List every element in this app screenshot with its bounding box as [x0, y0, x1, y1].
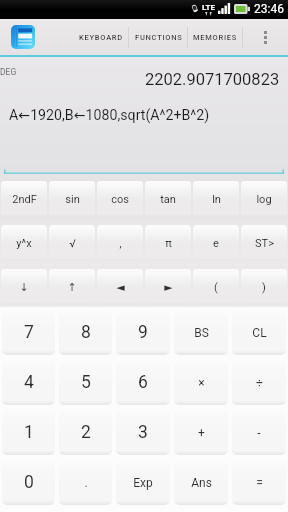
staticText: 1	[24, 422, 34, 443]
staticText: √	[69, 237, 76, 250]
button[interactable]: 3	[116, 410, 170, 455]
staticText: tan	[160, 193, 176, 206]
staticText: Ans	[191, 476, 212, 490]
button[interactable]: tan	[145, 181, 191, 217]
button[interactable]: y^x	[1, 225, 47, 261]
button[interactable]: 1	[2, 410, 55, 455]
button[interactable]: =	[232, 460, 286, 505]
button[interactable]: √	[49, 225, 95, 261]
button[interactable]: 2ndF	[1, 181, 47, 217]
staticText: DEG	[0, 67, 17, 77]
staticText: FUNCTIONS	[135, 33, 183, 42]
button[interactable]: 6	[116, 360, 170, 405]
button[interactable]: CL	[232, 310, 286, 355]
staticText: 6	[138, 372, 148, 393]
staticText: +	[198, 426, 205, 440]
staticText: 2ndF	[12, 193, 37, 206]
staticText: ↓	[19, 281, 29, 294]
staticText: -	[257, 426, 261, 440]
staticText: 0	[24, 472, 34, 493]
button[interactable]: ×	[174, 360, 228, 405]
staticText: ST>	[255, 237, 274, 250]
button[interactable]: 4	[2, 360, 55, 405]
staticText: ↑	[67, 281, 77, 294]
button[interactable]: log	[241, 181, 287, 217]
button[interactable]: BS	[174, 310, 228, 355]
staticText: 8	[81, 322, 91, 343]
staticText: 9	[138, 322, 148, 343]
button[interactable]: cos	[97, 181, 143, 217]
staticText: )	[262, 281, 266, 294]
staticText: Exp	[133, 476, 153, 490]
button[interactable]: 8	[59, 310, 112, 355]
button[interactable]: 5	[59, 360, 112, 405]
button[interactable]: Exp	[116, 460, 170, 505]
button[interactable]: Ans	[174, 460, 228, 505]
button[interactable]: -	[232, 410, 286, 455]
staticText: sin	[65, 193, 80, 206]
button[interactable]: ST>	[241, 225, 287, 261]
staticText: ►	[164, 281, 173, 294]
button[interactable]: ÷	[232, 360, 286, 405]
staticText: 2202.9071700823	[145, 70, 280, 89]
button[interactable]: 9	[116, 310, 170, 355]
button[interactable]: KEYBOARD	[72, 19, 129, 55]
staticText: 3	[138, 422, 148, 443]
button[interactable]: .	[59, 460, 112, 505]
staticText: ÷	[256, 376, 263, 390]
staticText: CL	[252, 326, 267, 340]
staticText: 23:46	[254, 2, 284, 16]
button[interactable]: MEMORIES	[188, 19, 243, 55]
button[interactable]: ,	[97, 225, 143, 261]
button[interactable]: ►	[145, 269, 191, 305]
staticText: log	[256, 193, 272, 206]
button[interactable]: 0	[2, 460, 55, 505]
button[interactable]: e	[193, 225, 239, 261]
staticText: =	[256, 476, 263, 490]
button[interactable]: ↑	[49, 269, 95, 305]
staticText: KEYBOARD	[79, 33, 123, 42]
staticText: 4	[24, 372, 34, 393]
button[interactable]: 2	[59, 410, 112, 455]
staticText: MEMORIES	[193, 33, 238, 42]
staticText: y^x	[16, 237, 32, 250]
button[interactable]: FUNCTIONS	[129, 19, 188, 55]
button[interactable]: +	[174, 410, 228, 455]
staticText: 5	[81, 372, 91, 393]
staticText: A←1920,B←1080,sqrt(A^2+B^2)	[9, 107, 210, 124]
staticText: BS	[194, 326, 209, 340]
button[interactable]: )	[241, 269, 287, 305]
button[interactable]: ↓	[1, 269, 47, 305]
staticText: ln	[212, 193, 221, 206]
button[interactable]: ◄	[97, 269, 143, 305]
staticText: ×	[198, 376, 205, 390]
staticText: (	[214, 281, 218, 294]
staticText: e	[213, 237, 219, 250]
button[interactable]: 7	[2, 310, 55, 355]
staticText: 2	[81, 422, 91, 443]
button[interactable]: More options	[242, 19, 288, 55]
button[interactable]: sin	[49, 181, 95, 217]
button[interactable]: π	[145, 225, 191, 261]
button[interactable]: ln	[193, 181, 239, 217]
staticText: π	[165, 237, 172, 250]
button[interactable]: (	[193, 269, 239, 305]
button[interactable]: Calculator	[11, 25, 35, 49]
staticText: 7	[24, 322, 34, 343]
staticText: .	[84, 476, 88, 490]
staticText: ,	[119, 237, 122, 250]
staticText: ◄	[116, 281, 125, 294]
staticText: LTE	[202, 3, 215, 12]
staticText: cos	[111, 193, 129, 206]
